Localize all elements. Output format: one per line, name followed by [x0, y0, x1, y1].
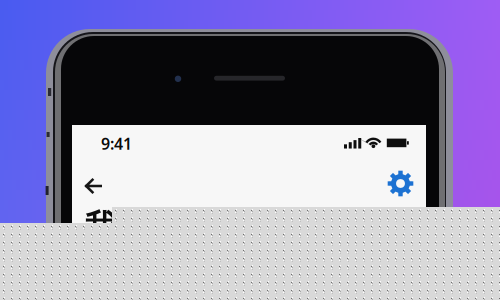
- staticText: 9:41: [101, 133, 132, 154]
- button[interactable]: Back: [73, 166, 113, 206]
- staticText: 我的: [85, 207, 147, 245]
- button[interactable]: Settings: [380, 163, 420, 203]
